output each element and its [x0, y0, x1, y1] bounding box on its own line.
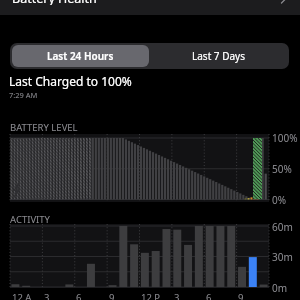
- staticText: 12 P: [141, 291, 161, 300]
- button[interactable]: Battery Health: [0, 0, 300, 15]
- staticText: 12 A: [12, 291, 32, 300]
- staticText: 9: [109, 291, 115, 300]
- staticText: 0m: [272, 281, 288, 295]
- staticText: Last 7 Days: [192, 49, 245, 63]
- staticText: 7:29 AM: [9, 90, 38, 100]
- staticText: ACTIVITY: [10, 213, 50, 226]
- staticText: 6: [206, 291, 212, 300]
- staticText: 100%: [272, 131, 298, 145]
- staticText: 0%: [272, 193, 287, 207]
- button[interactable]: Last 24 Hours: [12, 45, 149, 67]
- staticText: 60m: [272, 220, 293, 234]
- staticText: 6: [76, 291, 82, 300]
- other: Open Battery Health: [281, 0, 286, 3]
- staticText: Battery Health: [12, 0, 97, 5]
- button[interactable]: Last 7 Days: [149, 45, 287, 67]
- staticText: 3: [44, 291, 50, 300]
- staticText: 50%: [272, 162, 292, 176]
- staticText: 9: [238, 291, 244, 300]
- staticText: BATTERY LEVEL: [10, 121, 78, 134]
- staticText: 30m: [272, 250, 293, 264]
- staticText: Last Charged to 100%: [9, 73, 132, 89]
- staticText: Last 24 Hours: [47, 49, 114, 63]
- staticText: 3: [174, 291, 180, 300]
